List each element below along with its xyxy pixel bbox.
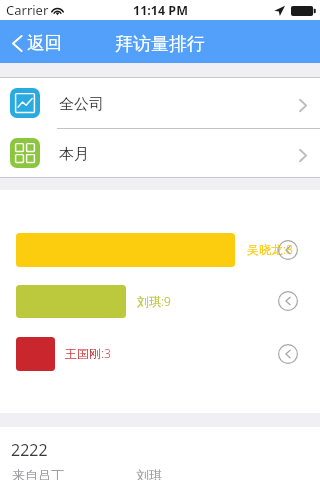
button[interactable]: 王国刚:3 [16, 337, 55, 371]
staticText: Carrier [6, 1, 49, 19]
staticText: 王国刚:3 [65, 345, 111, 361]
button[interactable]: 返回 [9, 27, 65, 59]
staticText: 刘琪:9 [137, 293, 171, 309]
button[interactable]: 查看详情 [278, 240, 298, 260]
staticText: 本月 [59, 145, 89, 164]
staticText: 返回 [27, 32, 62, 54]
staticText: 11:14 PM [133, 2, 188, 19]
button[interactable]: 查看详情 [278, 344, 298, 364]
button[interactable]: 本月 [0, 128, 320, 178]
button[interactable]: 查看详情 [278, 291, 298, 311]
staticText: 2222 [11, 439, 48, 461]
button[interactable]: 刘琪:9 [16, 285, 126, 318]
button[interactable]: 2222 [0, 427, 320, 480]
staticText: 刘琪 [136, 467, 162, 480]
button[interactable]: 全公司 [0, 78, 320, 128]
button[interactable]: 吴晓龙:8 [16, 233, 235, 267]
staticText: 吴晓龙:8 [247, 241, 293, 257]
staticText: 来自吕丁 [12, 467, 64, 480]
staticText: 全公司 [59, 95, 104, 114]
staticText: 拜访量排行 [115, 33, 205, 56]
